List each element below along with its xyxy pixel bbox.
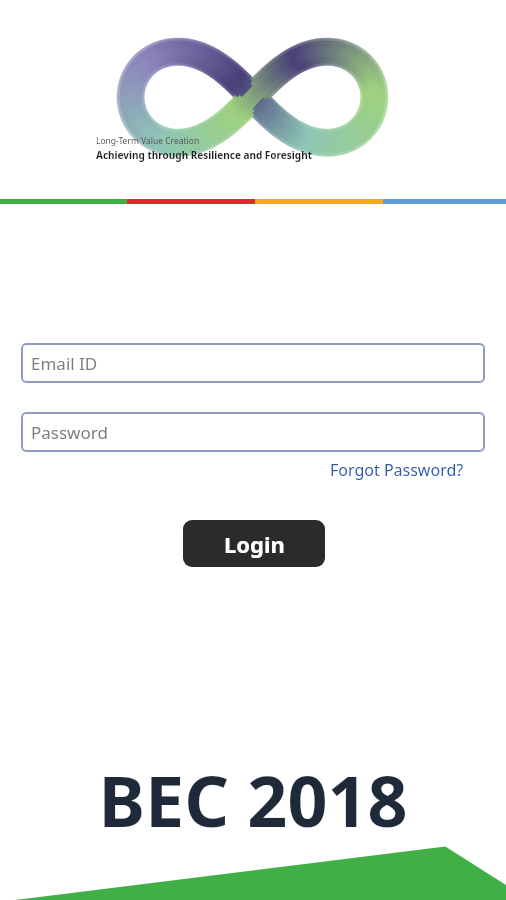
button[interactable]: Password bbox=[21, 412, 485, 452]
staticText: Login bbox=[224, 529, 285, 559]
staticText: BEC 2018 bbox=[98, 752, 408, 847]
button[interactable]: Email ID bbox=[21, 343, 485, 383]
staticText: Forgot Password? bbox=[330, 459, 464, 481]
button[interactable]: Login bbox=[183, 520, 325, 567]
staticText: Password bbox=[31, 421, 108, 444]
staticText: Email ID bbox=[31, 352, 98, 375]
staticText: Long-Term Value Creation bbox=[96, 135, 200, 147]
staticText: Achieving through Resilience and Foresig… bbox=[96, 148, 313, 162]
button[interactable]: Forgot Password? bbox=[326, 457, 468, 483]
